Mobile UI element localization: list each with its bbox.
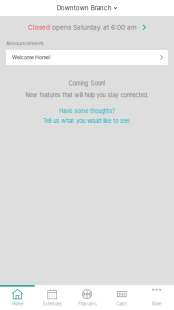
button[interactable]: Closed (0, 16, 174, 38)
button[interactable]: More (139, 285, 174, 310)
button[interactable]: Downtown Branch (0, 0, 174, 16)
staticText: Tell us what you would like to see. (43, 117, 131, 124)
staticText: Welcome Home! (12, 54, 50, 60)
staticText: More (152, 301, 161, 306)
staticText: Coming Soon! (68, 80, 105, 87)
staticText: Have some thoughts? (59, 108, 115, 114)
button[interactable]: Schedules (35, 285, 70, 310)
staticText: Home (12, 301, 23, 306)
staticText: Announcements (6, 41, 43, 46)
staticText: Cards (116, 301, 127, 306)
button[interactable]: Home (0, 285, 35, 310)
staticText: Programs (77, 301, 96, 306)
button[interactable]: Cards (104, 285, 139, 310)
button[interactable]: Programs (70, 285, 104, 310)
button[interactable]: Welcome Home! (0, 50, 174, 65)
staticText: Downtown Branch (57, 4, 112, 12)
staticText: New features that will help you stay con… (25, 92, 148, 99)
staticText: opens Saturday at 6:00 am (50, 23, 137, 31)
staticText: Closed (28, 23, 50, 31)
staticText: Schedules (43, 301, 62, 306)
